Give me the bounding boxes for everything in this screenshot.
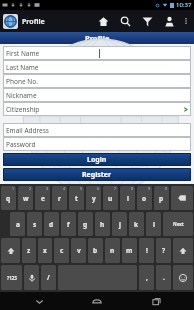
button[interactable]: Emoji <box>173 265 193 290</box>
staticText: ! <box>146 246 148 255</box>
button[interactable]: Shift <box>173 238 193 263</box>
staticText: i <box>127 194 129 203</box>
button[interactable]: Voice input <box>24 265 39 290</box>
button[interactable]: j <box>112 212 127 236</box>
button[interactable]: f <box>61 212 76 236</box>
staticText: h <box>100 220 105 229</box>
button[interactable]: e <box>35 186 50 210</box>
button[interactable]: c <box>54 238 69 263</box>
staticText: d <box>49 220 54 229</box>
button[interactable]: m <box>122 238 137 263</box>
staticText: q <box>6 194 11 203</box>
button[interactable]: Register <box>3 168 191 181</box>
button[interactable]: k <box>129 212 144 236</box>
button[interactable]: , <box>139 265 154 290</box>
button[interactable]: Shift <box>1 238 20 263</box>
button[interactable]: Account <box>158 10 180 32</box>
staticText: l <box>153 220 155 229</box>
button[interactable]: z <box>22 238 36 263</box>
button[interactable]: y <box>86 186 101 210</box>
button[interactable]: Filter <box>136 10 158 32</box>
button[interactable]: Last Name <box>3 60 191 74</box>
staticText: First Name <box>6 49 40 58</box>
button[interactable]: . <box>156 265 171 290</box>
button[interactable]: Profile <box>3 14 45 29</box>
button[interactable]: g <box>78 212 93 236</box>
staticText: Citizenship <box>6 105 40 114</box>
button[interactable]: Home <box>92 10 114 32</box>
button[interactable]: Nickname <box>3 88 191 102</box>
button[interactable]: More options <box>180 10 192 32</box>
staticText: 6 <box>97 186 100 191</box>
staticText: Login <box>87 155 107 165</box>
staticText: 7 <box>114 186 117 191</box>
button[interactable]: Email Address <box>3 123 191 137</box>
staticText: Password <box>6 140 36 149</box>
staticText: k <box>134 220 139 229</box>
staticText: ? <box>162 246 166 255</box>
button[interactable]: a <box>10 212 25 236</box>
button[interactable]: x <box>38 238 52 263</box>
staticText: o <box>142 194 147 203</box>
button[interactable]: Next <box>163 212 193 236</box>
staticText: 2 <box>29 186 32 191</box>
button[interactable]: r <box>52 186 67 210</box>
staticText: u <box>108 194 113 203</box>
button[interactable]: n <box>105 238 120 263</box>
staticText: c <box>60 246 64 255</box>
button[interactable]: ? <box>156 238 171 263</box>
button[interactable]: d <box>44 212 59 236</box>
button[interactable]: Login <box>3 153 191 166</box>
staticText: y <box>92 194 96 203</box>
button[interactable]: q <box>1 186 16 210</box>
button[interactable]: o <box>137 186 152 210</box>
button[interactable]: Back <box>19 292 59 310</box>
staticText: Email Address <box>6 126 49 135</box>
button[interactable]: First Name <box>3 46 191 60</box>
staticText: b <box>93 246 98 255</box>
button[interactable]: u <box>103 186 118 210</box>
staticText: Profile <box>85 33 110 43</box>
staticText: v <box>77 246 81 255</box>
button[interactable]: l <box>146 212 161 236</box>
button[interactable]: w <box>18 186 33 210</box>
button[interactable]: / <box>41 265 56 290</box>
staticText: x <box>43 246 47 255</box>
button[interactable]: Recent apps <box>136 292 176 310</box>
staticText: Phone No. <box>6 77 38 86</box>
staticText: n <box>110 246 115 255</box>
staticText: 8 <box>131 186 134 191</box>
staticText: Last Name <box>6 63 39 72</box>
button[interactable]: v <box>71 238 86 263</box>
button[interactable]: Citizenship <box>3 102 191 116</box>
staticText: . <box>163 273 165 282</box>
button[interactable]: p <box>154 186 169 210</box>
staticText: ?123 <box>7 275 17 281</box>
staticText: 5 <box>80 186 83 191</box>
staticText: 1 <box>12 186 15 191</box>
staticText: Next <box>173 221 184 227</box>
button[interactable]: Phone No. <box>3 74 191 88</box>
button[interactable]: ?123 <box>1 265 22 290</box>
button[interactable]: Backspace <box>171 186 193 210</box>
button[interactable]: Home <box>77 292 117 310</box>
staticText: 0 <box>165 186 168 191</box>
button[interactable]: ! <box>139 238 154 263</box>
staticText: a <box>16 220 20 229</box>
button[interactable]: i <box>120 186 135 210</box>
staticText: w <box>23 194 29 203</box>
button[interactable]: s <box>27 212 42 236</box>
staticText: p <box>159 194 164 203</box>
staticText: Nickname <box>6 91 37 100</box>
button[interactable]: t <box>69 186 84 210</box>
staticText: f <box>67 220 70 229</box>
staticText: r <box>58 194 61 203</box>
button[interactable]: Password <box>3 137 191 151</box>
staticText: e <box>41 194 45 203</box>
button[interactable]: h <box>95 212 110 236</box>
button[interactable]: Search <box>114 10 136 32</box>
button[interactable]: b <box>88 238 103 263</box>
staticText: 9 <box>148 186 151 191</box>
staticText: 3 <box>46 186 49 191</box>
